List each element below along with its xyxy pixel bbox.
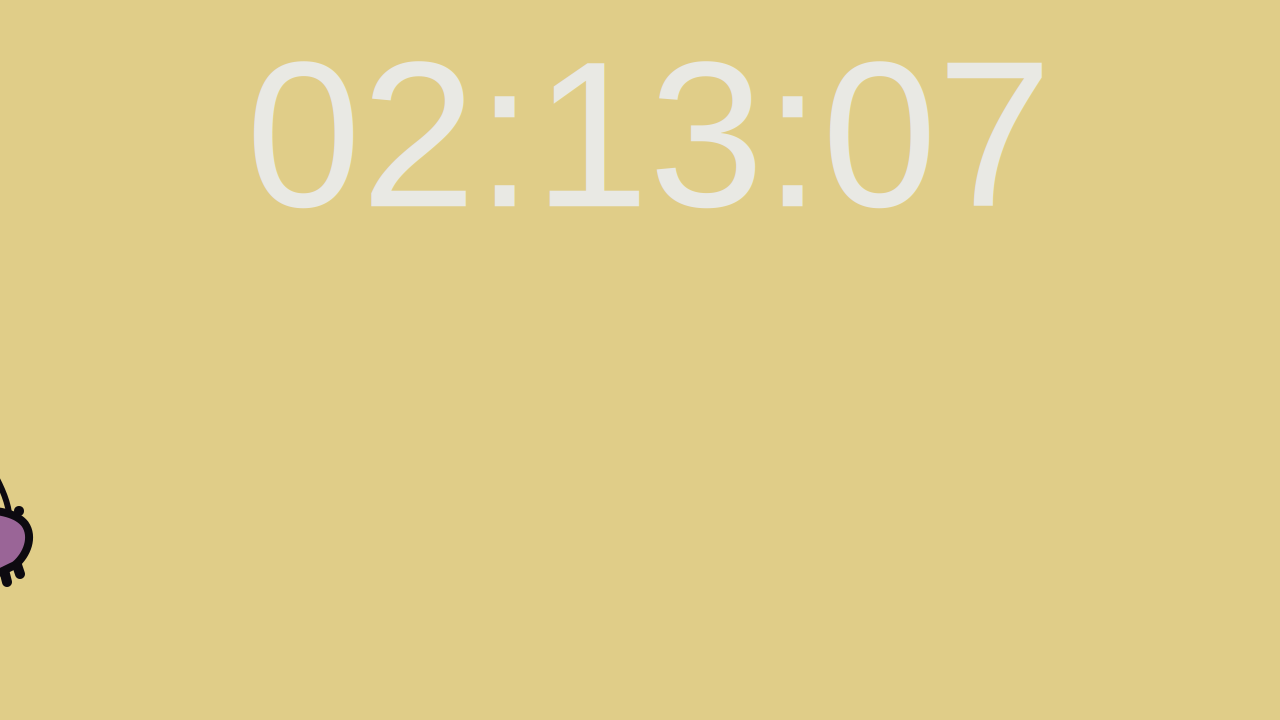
staticText: 02:13:07 [246,18,1052,250]
button[interactable]: 02:13:07 [246,18,1052,250]
